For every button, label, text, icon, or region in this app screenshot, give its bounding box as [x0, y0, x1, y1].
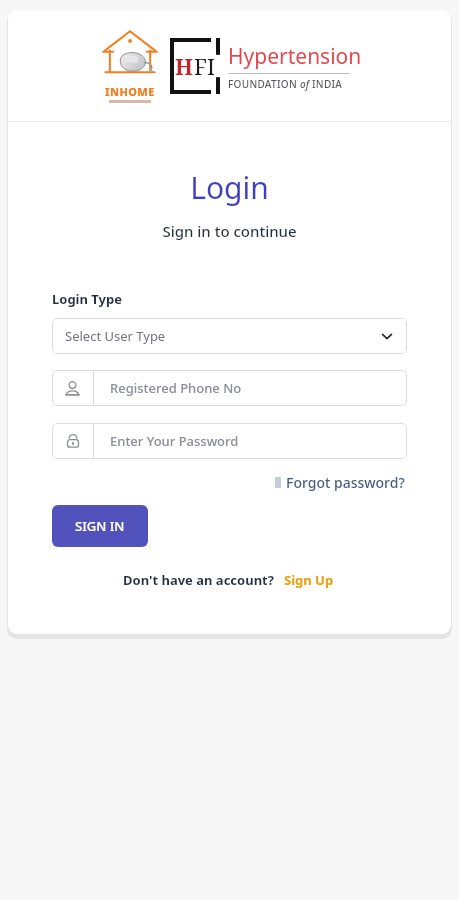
- button[interactable]: Forgot password?: [273, 471, 407, 494]
- staticText: of: [300, 77, 312, 91]
- staticText: Don't have an account?: [123, 571, 274, 589]
- staticText: Select User Type: [65, 327, 380, 345]
- staticText: FOUNDATION: [228, 77, 300, 91]
- staticText: INHOME: [105, 84, 155, 99]
- staticText: Hypertension: [228, 42, 362, 71]
- button[interactable]: SIGN IN: [52, 505, 148, 547]
- staticText: Registered Phone No: [110, 379, 242, 397]
- staticText: SIGN IN: [75, 517, 125, 535]
- button[interactable]: Password: [52, 423, 407, 459]
- staticText: Sign Up: [284, 571, 334, 589]
- staticText: Login: [52, 167, 407, 208]
- staticText: FI: [194, 51, 216, 81]
- button[interactable]: Select User Type: [52, 318, 407, 354]
- staticText: Login Type: [52, 290, 122, 308]
- button[interactable]: Sign Up: [282, 569, 336, 591]
- staticText: H: [175, 51, 194, 81]
- staticText: INDIA: [312, 77, 343, 91]
- button[interactable]: Registered Phone Number: [52, 370, 407, 406]
- staticText: Forgot password?: [286, 473, 405, 492]
- staticText: Sign in to continue: [52, 221, 407, 241]
- staticText: Enter Your Password: [110, 432, 239, 450]
